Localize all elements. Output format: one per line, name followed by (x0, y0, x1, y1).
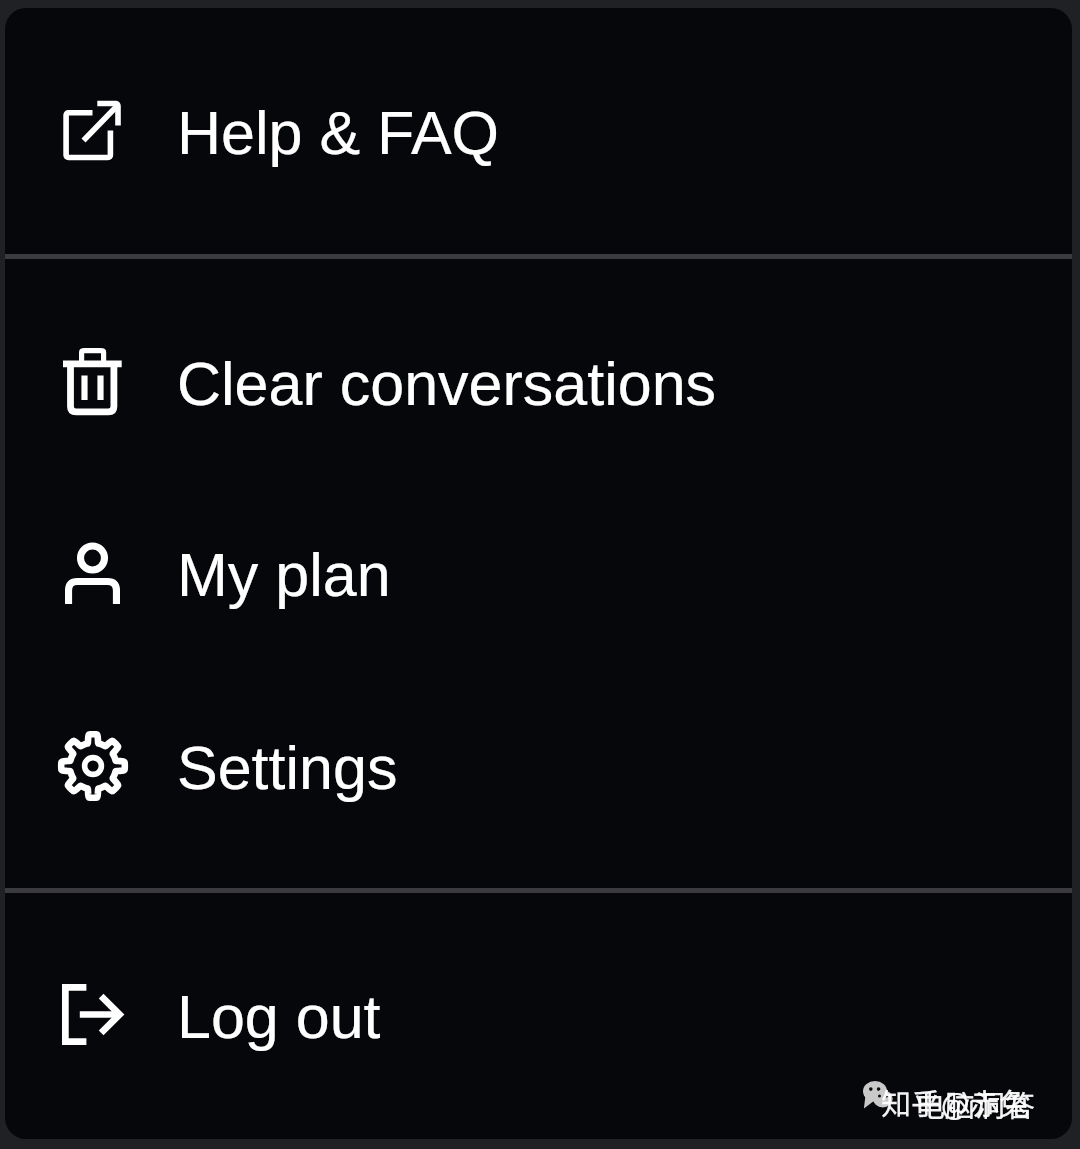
staticText: 电脑洞答 (915, 1082, 1035, 1125)
button[interactable]: Clear conversations (5, 259, 1072, 479)
staticText: 知乎@赤兔 (881, 1080, 1030, 1123)
other: My plan (65, 542, 120, 604)
button[interactable]: My plan (5, 478, 1072, 671)
other: Clear conversations (63, 348, 122, 416)
other: Help & FAQ (63, 100, 121, 161)
other: Log out (62, 984, 123, 1045)
button[interactable]: Settings (5, 671, 1072, 888)
staticText: Clear conversations (177, 350, 717, 418)
button[interactable]: Help & FAQ (5, 8, 1072, 254)
other: Settings (58, 731, 128, 801)
button[interactable]: Log out (5, 892, 1072, 1139)
staticText: Help & FAQ (177, 99, 500, 167)
staticText: Log out (177, 983, 381, 1051)
staticText: Settings (177, 734, 398, 802)
staticText: My plan (177, 541, 391, 609)
